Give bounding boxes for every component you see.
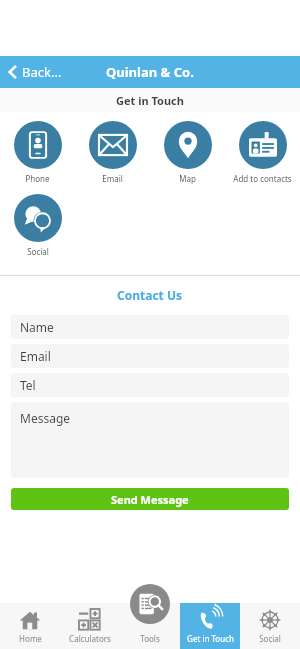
staticText: Send Message (111, 492, 189, 507)
staticText: Message (20, 410, 71, 426)
button[interactable]: Back... (0, 56, 70, 88)
staticText: Quinlan & Co. (106, 63, 194, 81)
button[interactable]: Send Message (11, 488, 289, 510)
staticText: Phone (25, 173, 50, 184)
button[interactable]: Phone (0, 119, 75, 186)
staticText: Back... (22, 63, 62, 81)
button[interactable]: Contact Us (117, 287, 183, 303)
staticText: Map (179, 173, 196, 184)
button[interactable]: Social (0, 192, 75, 259)
staticText: Home (19, 633, 42, 644)
button[interactable]: Message (11, 402, 289, 478)
button[interactable]: Calculators (60, 603, 120, 649)
staticText: Social (27, 246, 49, 257)
staticText: Calculators (69, 633, 111, 644)
button[interactable]: Email (75, 119, 150, 186)
button[interactable]: Tools (130, 584, 170, 624)
button[interactable]: Tools (120, 603, 180, 649)
staticText: Tel (20, 377, 36, 393)
staticText: Get in Touch (187, 633, 234, 644)
button[interactable]: Social (240, 603, 300, 649)
staticText: Email (102, 173, 123, 184)
button[interactable]: Get in Touch (180, 603, 240, 649)
button[interactable]: Map (150, 119, 225, 186)
button[interactable]: Name (11, 315, 289, 339)
staticText: Email (20, 348, 51, 364)
staticText: Tools (140, 633, 160, 644)
staticText: Get in Touch (116, 93, 184, 108)
staticText: Name (20, 319, 54, 335)
button[interactable]: Add to contacts (225, 119, 300, 186)
staticText: Social (259, 633, 281, 644)
staticText: Add to contacts (233, 173, 292, 184)
button[interactable]: Home (0, 603, 60, 649)
button[interactable]: Tel (11, 373, 289, 397)
button[interactable]: Email (11, 344, 289, 368)
